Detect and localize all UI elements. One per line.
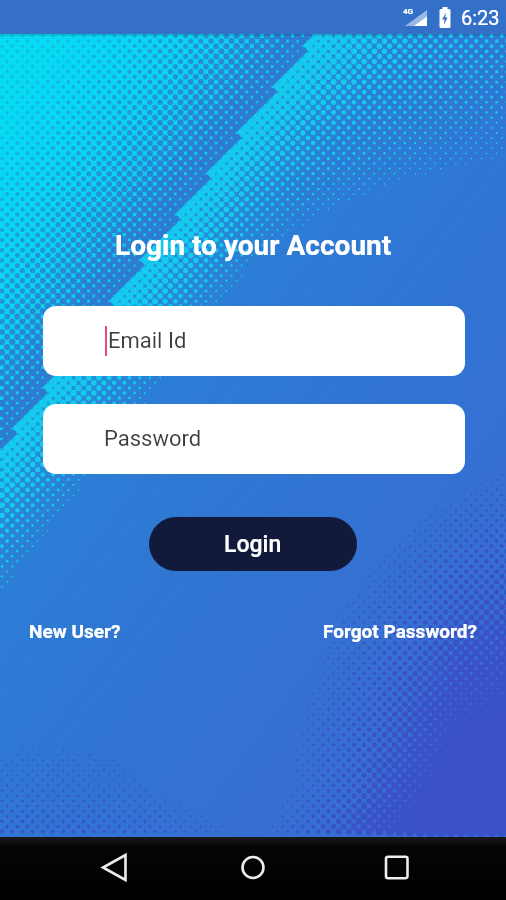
button[interactable]: Forgot Password? [323,620,478,642]
button[interactable]: New User? [29,620,121,642]
button[interactable] [371,842,421,895]
staticText: 6:23 [461,6,500,29]
staticText: Login to your Account [115,229,392,262]
staticText: Email Id [108,328,187,354]
button[interactable]: Email Id [43,306,465,376]
staticText: Login [224,531,282,558]
button[interactable]: Login [149,517,357,571]
staticText: 4G [403,7,414,16]
button[interactable] [90,842,140,895]
staticText: Password [104,426,202,452]
button[interactable]: Password [43,404,465,474]
button[interactable] [228,842,278,895]
